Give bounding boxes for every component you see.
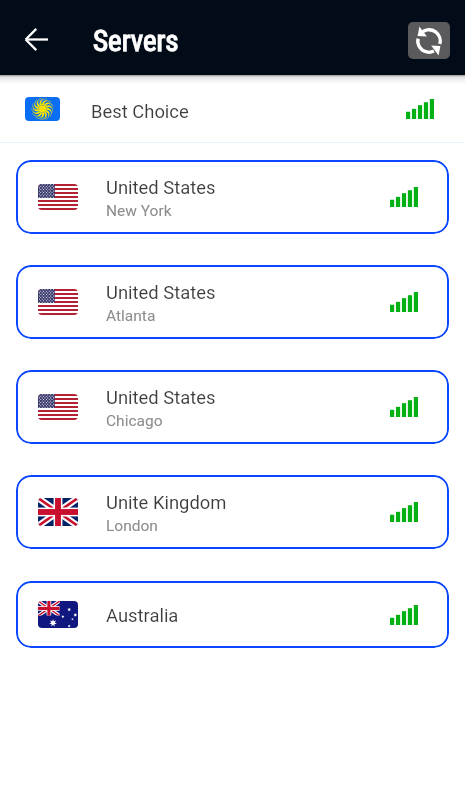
button[interactable]: Australia [16,581,449,648]
staticText: Atlanta [106,307,156,325]
staticText: Servers [93,24,179,58]
staticText: Unite Kingdom [106,492,227,514]
button[interactable]: United States [16,160,449,234]
staticText: Best Choice [91,101,189,123]
staticText: Australia [106,605,179,627]
button[interactable]: Refresh [408,22,450,59]
staticText: Chicago [106,412,163,430]
staticText: United States [106,177,216,199]
button[interactable]: Back [14,17,58,61]
button[interactable]: United States [16,265,449,339]
button[interactable]: Unite Kingdom [16,475,449,549]
staticText: United States [106,282,216,304]
staticText: London [106,517,158,535]
staticText: New York [106,202,172,220]
staticText: United States [106,387,216,409]
button[interactable]: Best Choice [0,75,465,142]
button[interactable]: United States [16,370,449,444]
